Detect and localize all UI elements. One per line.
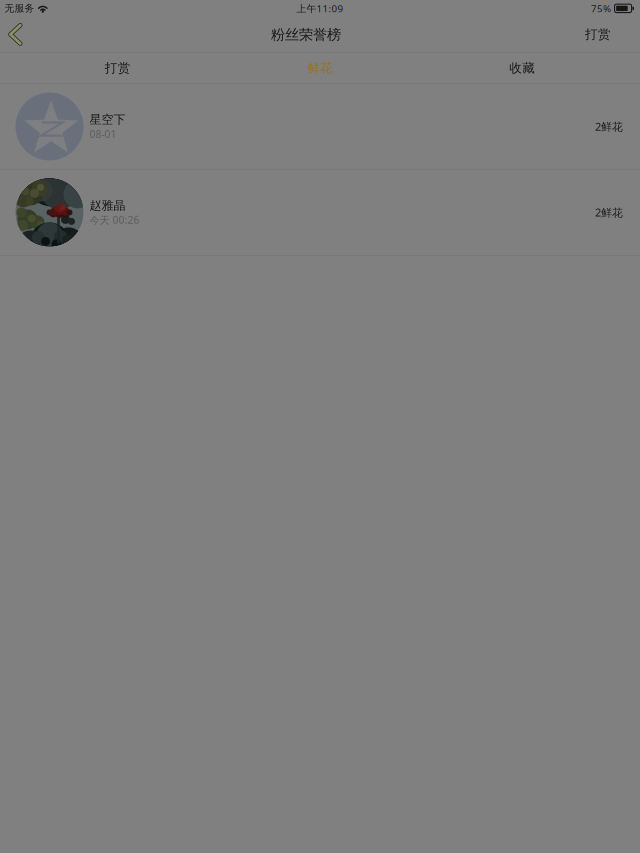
staticText: 打赏: [105, 60, 131, 76]
staticText: 08-01: [89, 127, 116, 141]
button[interactable]: 打赏: [17, 53, 219, 83]
staticText: 打赏: [585, 26, 611, 42]
staticText: 无服务: [4, 2, 34, 14]
button[interactable]: 收藏: [421, 53, 623, 83]
button[interactable]: 返回: [0, 17, 38, 52]
staticText: 收藏: [509, 60, 535, 76]
staticText: 赵雅晶: [89, 198, 125, 213]
button[interactable]: 鲜花: [219, 53, 421, 83]
button[interactable]: 打赏: [573, 17, 623, 52]
staticText: 星空下: [89, 112, 125, 127]
button[interactable]: 赵雅晶: [0, 170, 640, 255]
staticText: 2鲜花: [595, 119, 623, 134]
staticText: 鲜花: [307, 60, 333, 76]
button[interactable]: 星空下: [0, 84, 640, 169]
staticText: 上午11:09: [296, 2, 343, 15]
staticText: 2鲜花: [595, 205, 623, 220]
staticText: 今天 00:26: [89, 213, 139, 227]
staticText: 75%: [591, 2, 611, 15]
staticText: 粉丝荣誉榜: [271, 26, 341, 44]
